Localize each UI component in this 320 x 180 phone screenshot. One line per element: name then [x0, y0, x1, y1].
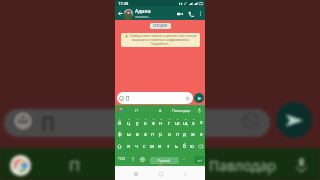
- button[interactable]: п: [149, 128, 157, 140]
- staticText: щ: [183, 120, 188, 127]
- button[interactable]: А: [148, 105, 172, 116]
- button[interactable]: э: [197, 128, 205, 140]
- staticText: П: [69, 155, 80, 175]
- button[interactable]: о: [165, 128, 173, 140]
- staticText: в: [136, 131, 139, 138]
- staticText: т: [167, 143, 170, 150]
- staticText: 2: [128, 117, 130, 120]
- button[interactable]: Enter: [194, 156, 204, 164]
- button[interactable]: 8: [173, 116, 181, 128]
- button[interactable]: 6: [157, 116, 165, 128]
- staticText: ю: [190, 143, 194, 150]
- button[interactable]: Attach file: [184, 95, 190, 101]
- staticText: ф: [118, 131, 122, 138]
- staticText: ш: [175, 120, 180, 127]
- staticText: 17:38: [118, 1, 129, 6]
- staticText: 1: [119, 117, 121, 120]
- staticText: у: [136, 120, 139, 127]
- button[interactable]: 3: [133, 116, 141, 128]
- button[interactable]: ю: [188, 140, 196, 152]
- button[interactable]: р: [157, 128, 165, 140]
- button[interactable]: More options: [197, 10, 204, 17]
- staticText: с: [143, 143, 146, 150]
- button[interactable]: ?123: [115, 152, 127, 166]
- button[interactable]: Recents: [131, 169, 140, 178]
- button[interactable]: а: [141, 128, 149, 140]
- staticText: э: [200, 131, 203, 138]
- button[interactable]: Voice input: [196, 107, 203, 114]
- button[interactable]: в: [133, 128, 141, 140]
- button[interactable]: Home: [156, 169, 165, 178]
- button[interactable]: х: [197, 116, 205, 128]
- button[interactable]: Switch language: [138, 152, 146, 166]
- staticText: П: [126, 95, 130, 101]
- button[interactable]: 7: [165, 116, 173, 128]
- button[interactable]: с: [140, 140, 148, 152]
- staticText: Русский: [158, 159, 171, 163]
- button[interactable]: ф: [115, 128, 124, 140]
- staticText: я: [127, 143, 130, 150]
- staticText: о: [168, 131, 171, 138]
- staticText: л: [176, 131, 179, 138]
- staticText: р: [159, 131, 163, 138]
- staticText: П: [135, 108, 138, 113]
- staticText: д: [183, 131, 187, 138]
- button[interactable]: Back: [180, 169, 189, 178]
- button[interactable]: т: [164, 140, 172, 152]
- staticText: 5: [153, 117, 155, 120]
- button[interactable]: Video call: [175, 9, 184, 18]
- button[interactable]: я: [124, 140, 132, 152]
- staticText: к: [144, 120, 147, 127]
- button[interactable]: ж: [189, 128, 197, 140]
- button[interactable]: Google: [116, 107, 124, 115]
- button[interactable]: Space: [150, 157, 179, 164]
- staticText: СЕГОДНЯ: [153, 24, 168, 28]
- button[interactable]: д: [181, 128, 189, 140]
- button[interactable]: Emoji: [129, 152, 137, 166]
- staticText: 🔒 Сообщения и звонки в данном чате тепер…: [124, 34, 197, 46]
- button[interactable]: 5: [149, 116, 157, 128]
- button[interactable]: б: [180, 140, 188, 152]
- staticText: 6: [160, 117, 162, 120]
- staticText: и: [158, 143, 162, 150]
- staticText: н: [159, 120, 163, 127]
- staticText: ы: [127, 131, 131, 138]
- staticText: б: [183, 143, 186, 150]
- button[interactable]: л: [173, 128, 181, 140]
- button[interactable]: Call: [186, 9, 195, 18]
- staticText: Адина: [135, 8, 151, 15]
- staticText: А: [159, 108, 162, 113]
- button[interactable]: ч: [132, 140, 140, 152]
- staticText: 9: [185, 117, 187, 120]
- button[interactable]: 9: [181, 116, 189, 128]
- button[interactable]: Shift: [115, 140, 124, 152]
- staticText: е: [152, 120, 155, 127]
- staticText: а: [144, 131, 147, 138]
- staticText: 8: [177, 117, 179, 120]
- button[interactable]: 2: [124, 116, 133, 128]
- button[interactable]: Backspace: [196, 140, 205, 152]
- button[interactable]: ы: [124, 128, 133, 140]
- button[interactable]: ь: [172, 140, 180, 152]
- button[interactable]: и: [156, 140, 164, 152]
- button[interactable]: Павлодар: [169, 105, 193, 116]
- button[interactable]: м: [148, 140, 156, 152]
- staticText: печатает...: [135, 15, 151, 19]
- button[interactable]: Send: [194, 93, 204, 103]
- button[interactable]: П: [117, 92, 193, 104]
- staticText: 3: [137, 117, 139, 120]
- staticText: 0: [193, 117, 195, 120]
- button[interactable]: Period: [181, 152, 187, 166]
- button[interactable]: 4: [141, 116, 149, 128]
- staticText: ь: [175, 143, 178, 150]
- staticText: х: [200, 119, 203, 126]
- staticText: Павлодар: [209, 156, 277, 175]
- staticText: ц: [127, 120, 131, 127]
- staticText: м: [150, 143, 154, 150]
- button[interactable]: 1: [115, 116, 124, 128]
- button[interactable]: Back: [116, 9, 124, 17]
- staticText: ж: [191, 131, 195, 138]
- button[interactable]: П: [124, 105, 148, 116]
- staticText: г: [168, 120, 171, 127]
- button[interactable]: 0: [189, 116, 197, 128]
